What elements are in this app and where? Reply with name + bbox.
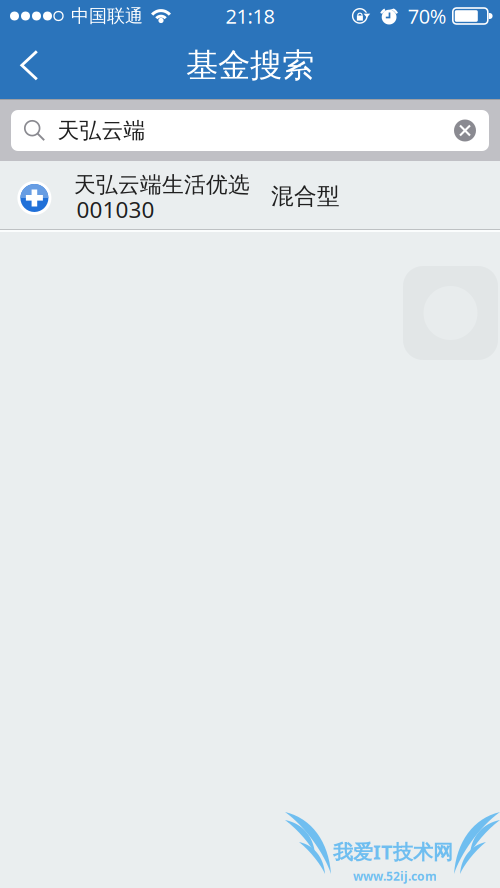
staticText: 21:18 <box>225 2 274 30</box>
staticText: 天弘云端生活优选 <box>74 171 250 198</box>
button[interactable]: 清除 <box>447 112 483 148</box>
button[interactable]: 返回 <box>0 32 60 99</box>
staticText: 我爱IT技术网 <box>333 838 453 865</box>
staticText: www.52ij.com <box>353 868 437 884</box>
staticText: 001030 <box>76 194 154 225</box>
staticText: 天弘云端 <box>57 117 145 144</box>
staticText: 混合型 <box>271 182 340 211</box>
staticText: 70% <box>408 2 447 30</box>
staticText: 中国联通 <box>71 5 143 27</box>
staticText: 基金搜索 <box>186 45 314 86</box>
button[interactable]: 天弘云端生活优选 <box>0 161 500 229</box>
